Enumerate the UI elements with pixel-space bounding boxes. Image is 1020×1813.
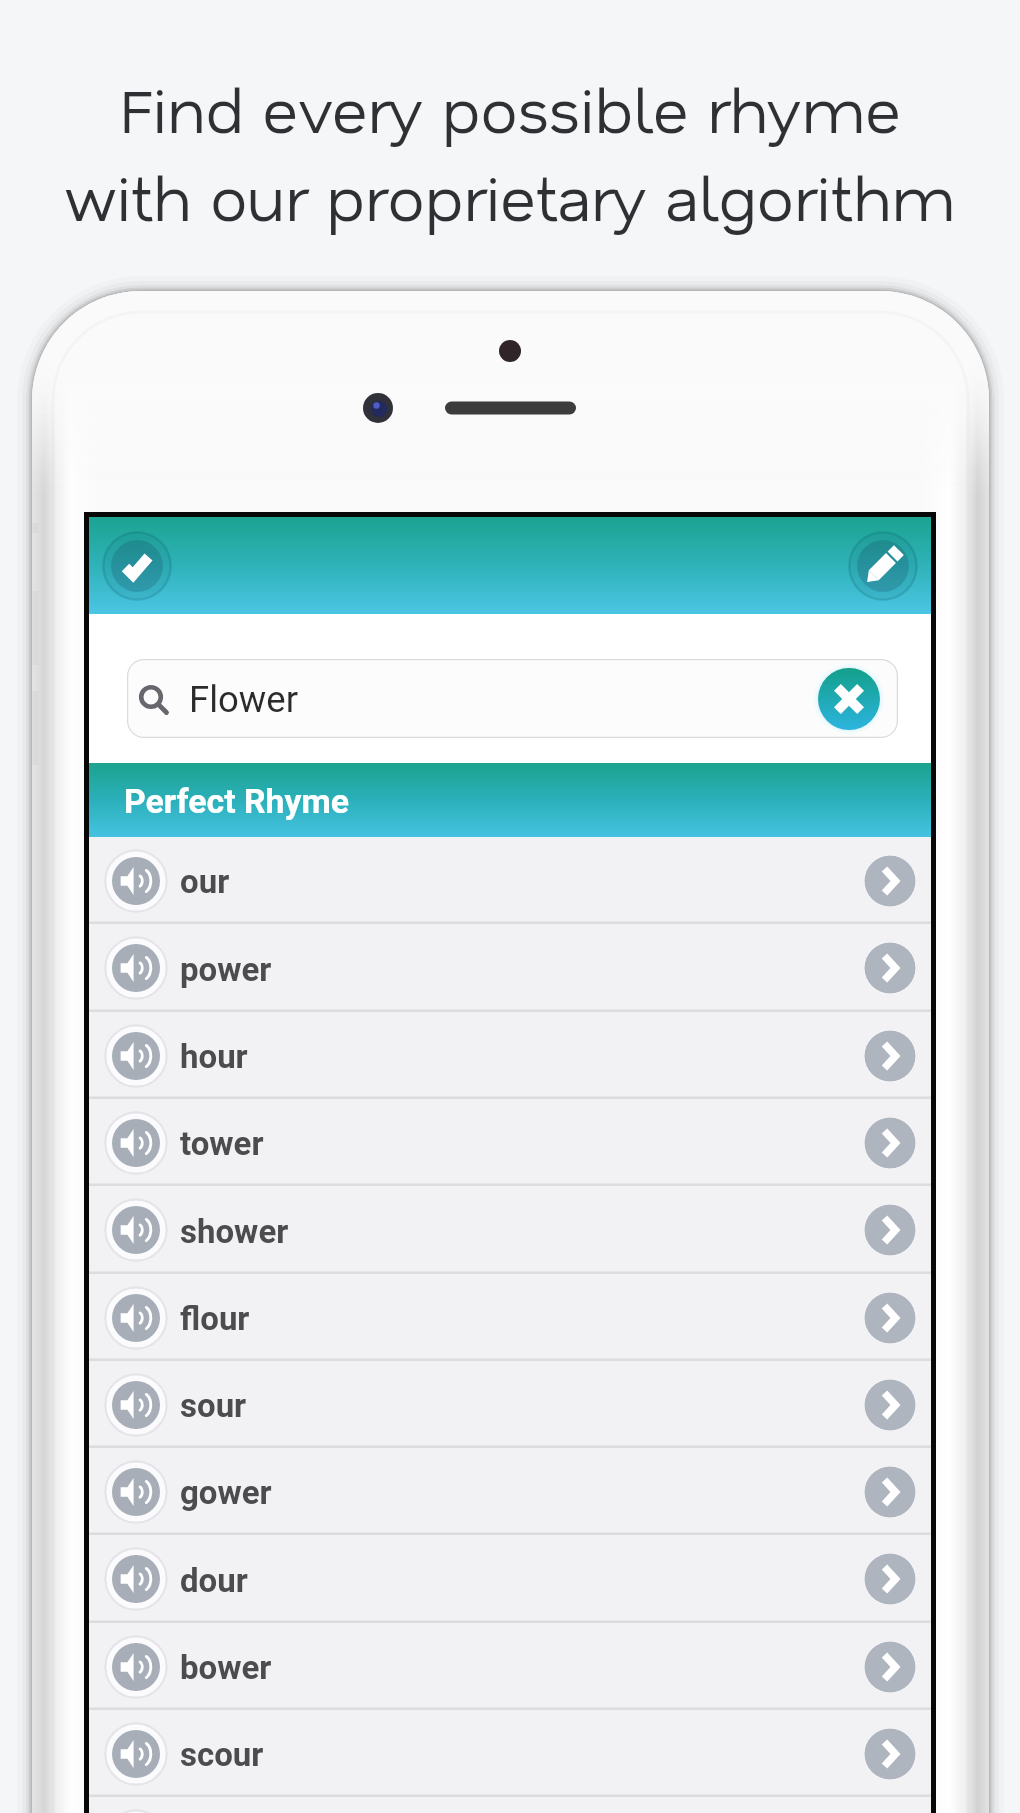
button[interactable]: Pronounce bower [89,1623,931,1710]
button[interactable]: Open sour [864,1379,916,1431]
staticText: gower [180,1473,272,1512]
button[interactable]: Open flour [864,1292,916,1344]
button[interactable]: Pronounce gower [104,1460,168,1524]
button[interactable]: Pronounce hour [89,1012,931,1099]
button[interactable]: Pronounce power [104,936,168,1000]
button[interactable]: Pronounce flour [104,1286,168,1350]
button[interactable]: Pronounce sour [104,1373,168,1437]
button[interactable]: Open scour [864,1728,916,1780]
button[interactable]: Open dour [864,1553,916,1605]
staticText: sour [180,1386,247,1425]
button[interactable]: Pronounce hour [104,1024,168,1088]
button[interactable]: Flower [127,659,898,738]
button[interactable]: Open bower [864,1641,916,1693]
button[interactable]: Pronounce our [104,849,168,913]
staticText: scour [180,1735,264,1774]
staticText: Perfect Rhyme [124,782,350,822]
button[interactable]: Pronounce scour [104,1722,168,1786]
button[interactable]: Pronounce tower [104,1111,168,1175]
button[interactable]: Edit [848,531,918,601]
button[interactable]: Pronounce tower [89,1099,931,1186]
staticText: flour [180,1299,250,1338]
button[interactable]: Open our [864,855,916,907]
button[interactable]: Open gower [864,1466,916,1518]
staticText: Find every possible rhyme [0,68,1020,149]
button[interactable]: Clear search [813,663,885,735]
button[interactable]: Pronounce our [89,837,931,924]
staticText: our [180,862,230,901]
button[interactable]: Pronounce gower [89,1448,931,1535]
staticText: with our proprietary algorithm [0,156,1020,237]
button[interactable]: Pronounce shower [104,1198,168,1262]
staticText: hour [180,1037,248,1076]
button[interactable]: Open hour [864,1030,916,1082]
button[interactable]: Pronounce flour [89,1274,931,1361]
button[interactable]: Pronounce scour [89,1710,931,1797]
button[interactable]: Open tower [864,1117,916,1169]
button[interactable]: Done [102,531,172,601]
staticText: dour [180,1561,248,1600]
button[interactable]: Pronounce bower [104,1635,168,1699]
button[interactable]: Open power [864,942,916,994]
staticText: Flower [189,678,299,721]
button[interactable]: Pronounce glower [104,1809,168,1813]
button[interactable]: Pronounce shower [89,1186,931,1274]
button[interactable]: Pronounce sour [89,1361,931,1448]
button[interactable]: Open shower [864,1204,916,1256]
button[interactable]: Pronounce dour [104,1547,168,1611]
staticText: bower [180,1648,272,1687]
button[interactable]: Pronounce power [89,924,931,1012]
staticText: power [180,950,272,989]
button[interactable]: Pronounce dour [89,1535,931,1623]
staticText: shower [180,1212,289,1251]
staticText: tower [180,1124,264,1163]
